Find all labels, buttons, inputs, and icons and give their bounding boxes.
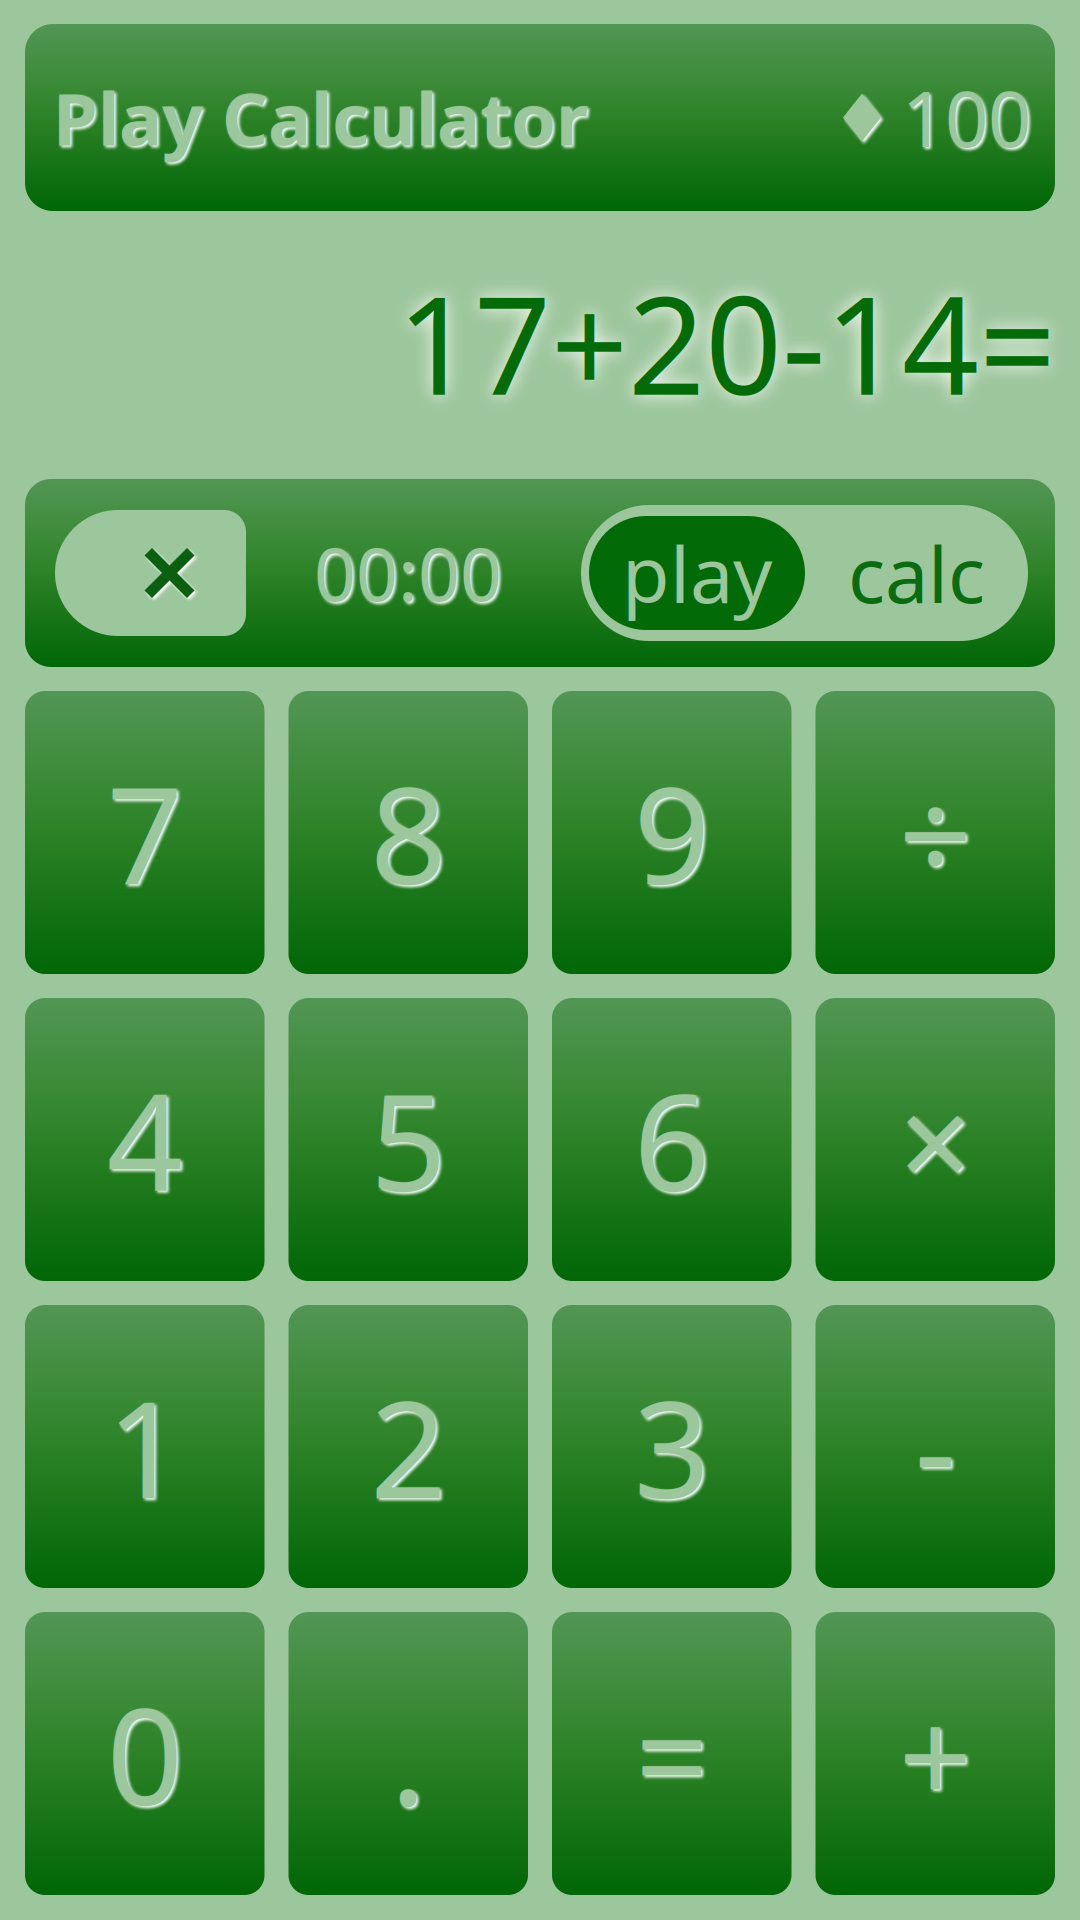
button[interactable]: 5 — [288, 998, 528, 1281]
staticText: ÷ — [899, 747, 972, 917]
button[interactable]: - — [815, 1305, 1055, 1588]
staticText: . — [390, 1665, 426, 1842]
staticText: 7 — [107, 744, 183, 921]
button[interactable]: 8 — [288, 691, 528, 974]
button[interactable]: 6 — [552, 998, 791, 1281]
staticText: 0 — [107, 1665, 183, 1842]
button[interactable]: + — [815, 1612, 1055, 1895]
staticText: 3 — [634, 1358, 710, 1535]
staticText: 1 — [107, 1358, 183, 1535]
staticText: 4 — [107, 1051, 183, 1228]
staticText: 17+20-14= — [397, 253, 1056, 432]
button[interactable]: . — [288, 1612, 528, 1895]
staticText: = — [635, 1668, 708, 1838]
staticText: - — [915, 1361, 956, 1531]
staticText: 00:00 — [314, 524, 502, 622]
button[interactable]: = — [552, 1612, 791, 1895]
button[interactable]: 4 — [25, 998, 264, 1281]
staticText: Play Calculator — [53, 70, 588, 165]
staticText: 2 — [370, 1358, 446, 1535]
staticText: 8 — [370, 744, 446, 921]
button[interactable]: 1 — [25, 1305, 264, 1588]
staticText: 9 — [634, 744, 710, 921]
button[interactable]: 3 — [552, 1305, 791, 1588]
button[interactable]: Clear — [55, 510, 246, 636]
staticText: + — [899, 1668, 972, 1838]
staticText: 100 — [902, 67, 1031, 168]
staticText: 5 — [370, 1051, 446, 1228]
staticText: 6 — [634, 1051, 710, 1228]
button[interactable]: 9 — [552, 691, 791, 974]
button[interactable]: 2 — [288, 1305, 528, 1588]
button[interactable]: 0 — [25, 1612, 264, 1895]
staticText: calc — [848, 522, 985, 624]
button[interactable]: ÷ — [815, 691, 1055, 974]
button[interactable]: play — [581, 516, 805, 630]
staticText: × — [899, 1054, 972, 1224]
staticText: play — [622, 522, 772, 624]
button[interactable]: × — [815, 998, 1055, 1281]
button[interactable]: 7 — [25, 691, 264, 974]
button[interactable]: calc — [805, 516, 1028, 630]
